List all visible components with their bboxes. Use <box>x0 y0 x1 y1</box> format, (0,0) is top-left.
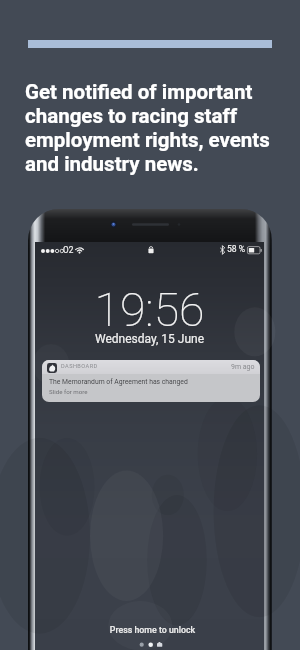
staticText: 9m ago <box>231 363 255 371</box>
staticText: Press home to unlock <box>38 625 267 635</box>
staticText: O2 <box>63 245 74 255</box>
staticText: Wednesday, 15 June <box>35 332 264 346</box>
staticText: The Memorandum of Agreement has changed <box>49 378 188 386</box>
staticText: DASHBOARD <box>61 363 98 370</box>
button[interactable]: DASHBOARD <box>42 360 260 402</box>
staticText: 19:56 <box>35 283 264 337</box>
staticText: 58 % <box>227 244 246 254</box>
staticText: Get notified of important changes to rac… <box>25 80 281 176</box>
staticText: Slide for more <box>49 388 88 395</box>
